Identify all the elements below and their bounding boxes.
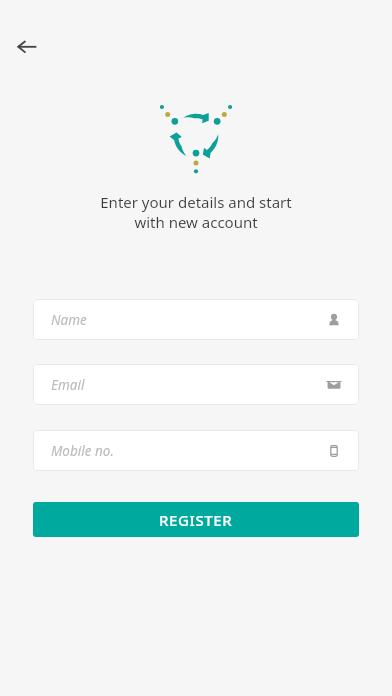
button[interactable]: Email: [33, 364, 359, 405]
staticText: REGISTER: [159, 510, 233, 530]
button[interactable]: Back: [9, 33, 37, 61]
staticText: Name: [51, 311, 87, 329]
button[interactable]: Name: [33, 299, 359, 340]
staticText: Mobile no.: [51, 442, 114, 460]
staticText: Email: [51, 376, 85, 394]
button[interactable]: REGISTER: [33, 502, 359, 537]
button[interactable]: Mobile no.: [33, 430, 359, 471]
staticText: Enter your details and start with new ac…: [100, 192, 292, 232]
